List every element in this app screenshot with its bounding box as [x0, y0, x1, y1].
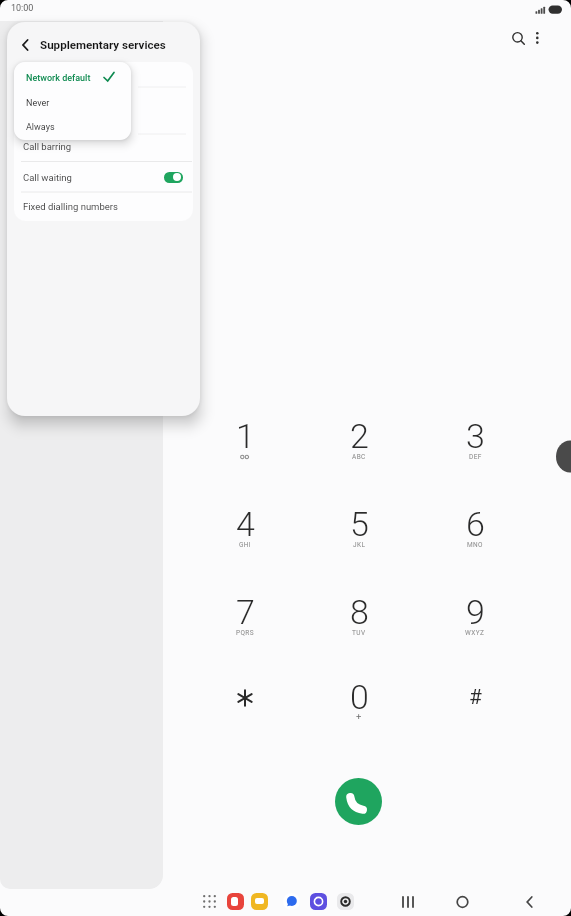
button[interactable] [215, 499, 275, 553]
staticText: DEF [469, 453, 482, 461]
staticText: 2 [350, 416, 369, 452]
button[interactable] [335, 778, 382, 825]
button[interactable] [329, 411, 389, 465]
staticText: 4 [236, 504, 255, 540]
button[interactable] [337, 893, 354, 910]
staticText: 7 [236, 592, 255, 628]
button[interactable] [14, 162, 193, 193]
staticText: GHI [239, 541, 252, 549]
button[interactable] [251, 893, 268, 910]
button[interactable] [328, 672, 388, 726]
staticText: + [356, 711, 362, 722]
staticText: 0 [350, 677, 369, 713]
staticText: PQRS [236, 629, 255, 637]
staticText: TUV [352, 629, 366, 637]
staticText: Network default [26, 73, 91, 84]
button[interactable] [398, 893, 418, 911]
button[interactable]: Network default [26, 66, 111, 90]
staticText: Call waiting [23, 172, 72, 183]
button[interactable] [528, 28, 547, 48]
staticText: MNO [467, 541, 483, 549]
button[interactable]: Call barring [23, 131, 143, 162]
staticText: ABC [352, 453, 366, 461]
button[interactable] [444, 672, 504, 726]
staticText: 1 [236, 416, 255, 452]
button[interactable] [445, 499, 505, 553]
staticText: 9 [466, 592, 485, 628]
button[interactable] [329, 499, 389, 553]
button[interactable] [227, 893, 244, 910]
button[interactable] [520, 892, 540, 912]
button[interactable] [214, 672, 274, 726]
staticText: 10:00 [11, 3, 34, 14]
button[interactable] [215, 588, 275, 642]
staticText: 6 [466, 504, 485, 540]
staticText: 3 [466, 416, 485, 452]
button[interactable] [283, 893, 300, 910]
button[interactable] [201, 893, 218, 910]
button[interactable]: Never [26, 91, 111, 115]
staticText: Supplementary services [40, 38, 166, 52]
button[interactable] [329, 588, 389, 642]
button[interactable] [445, 411, 505, 465]
button[interactable] [215, 411, 275, 465]
button[interactable] [445, 588, 505, 642]
staticText: 5 [350, 504, 369, 540]
staticText: # [469, 685, 482, 709]
staticText: Call barring [23, 141, 72, 152]
button[interactable] [452, 892, 472, 912]
staticText: Fixed dialling numbers [23, 201, 118, 212]
button[interactable] [310, 893, 327, 910]
button[interactable]: Fixed dialling numbers [23, 192, 173, 221]
button[interactable] [14, 34, 36, 56]
staticText: Never [26, 98, 50, 109]
button[interactable]: Always [26, 115, 111, 139]
staticText: JKL [353, 541, 366, 549]
staticText: 8 [350, 592, 369, 628]
staticText: Always [26, 122, 55, 133]
staticText: WXYZ [465, 629, 485, 637]
button[interactable] [508, 28, 528, 48]
